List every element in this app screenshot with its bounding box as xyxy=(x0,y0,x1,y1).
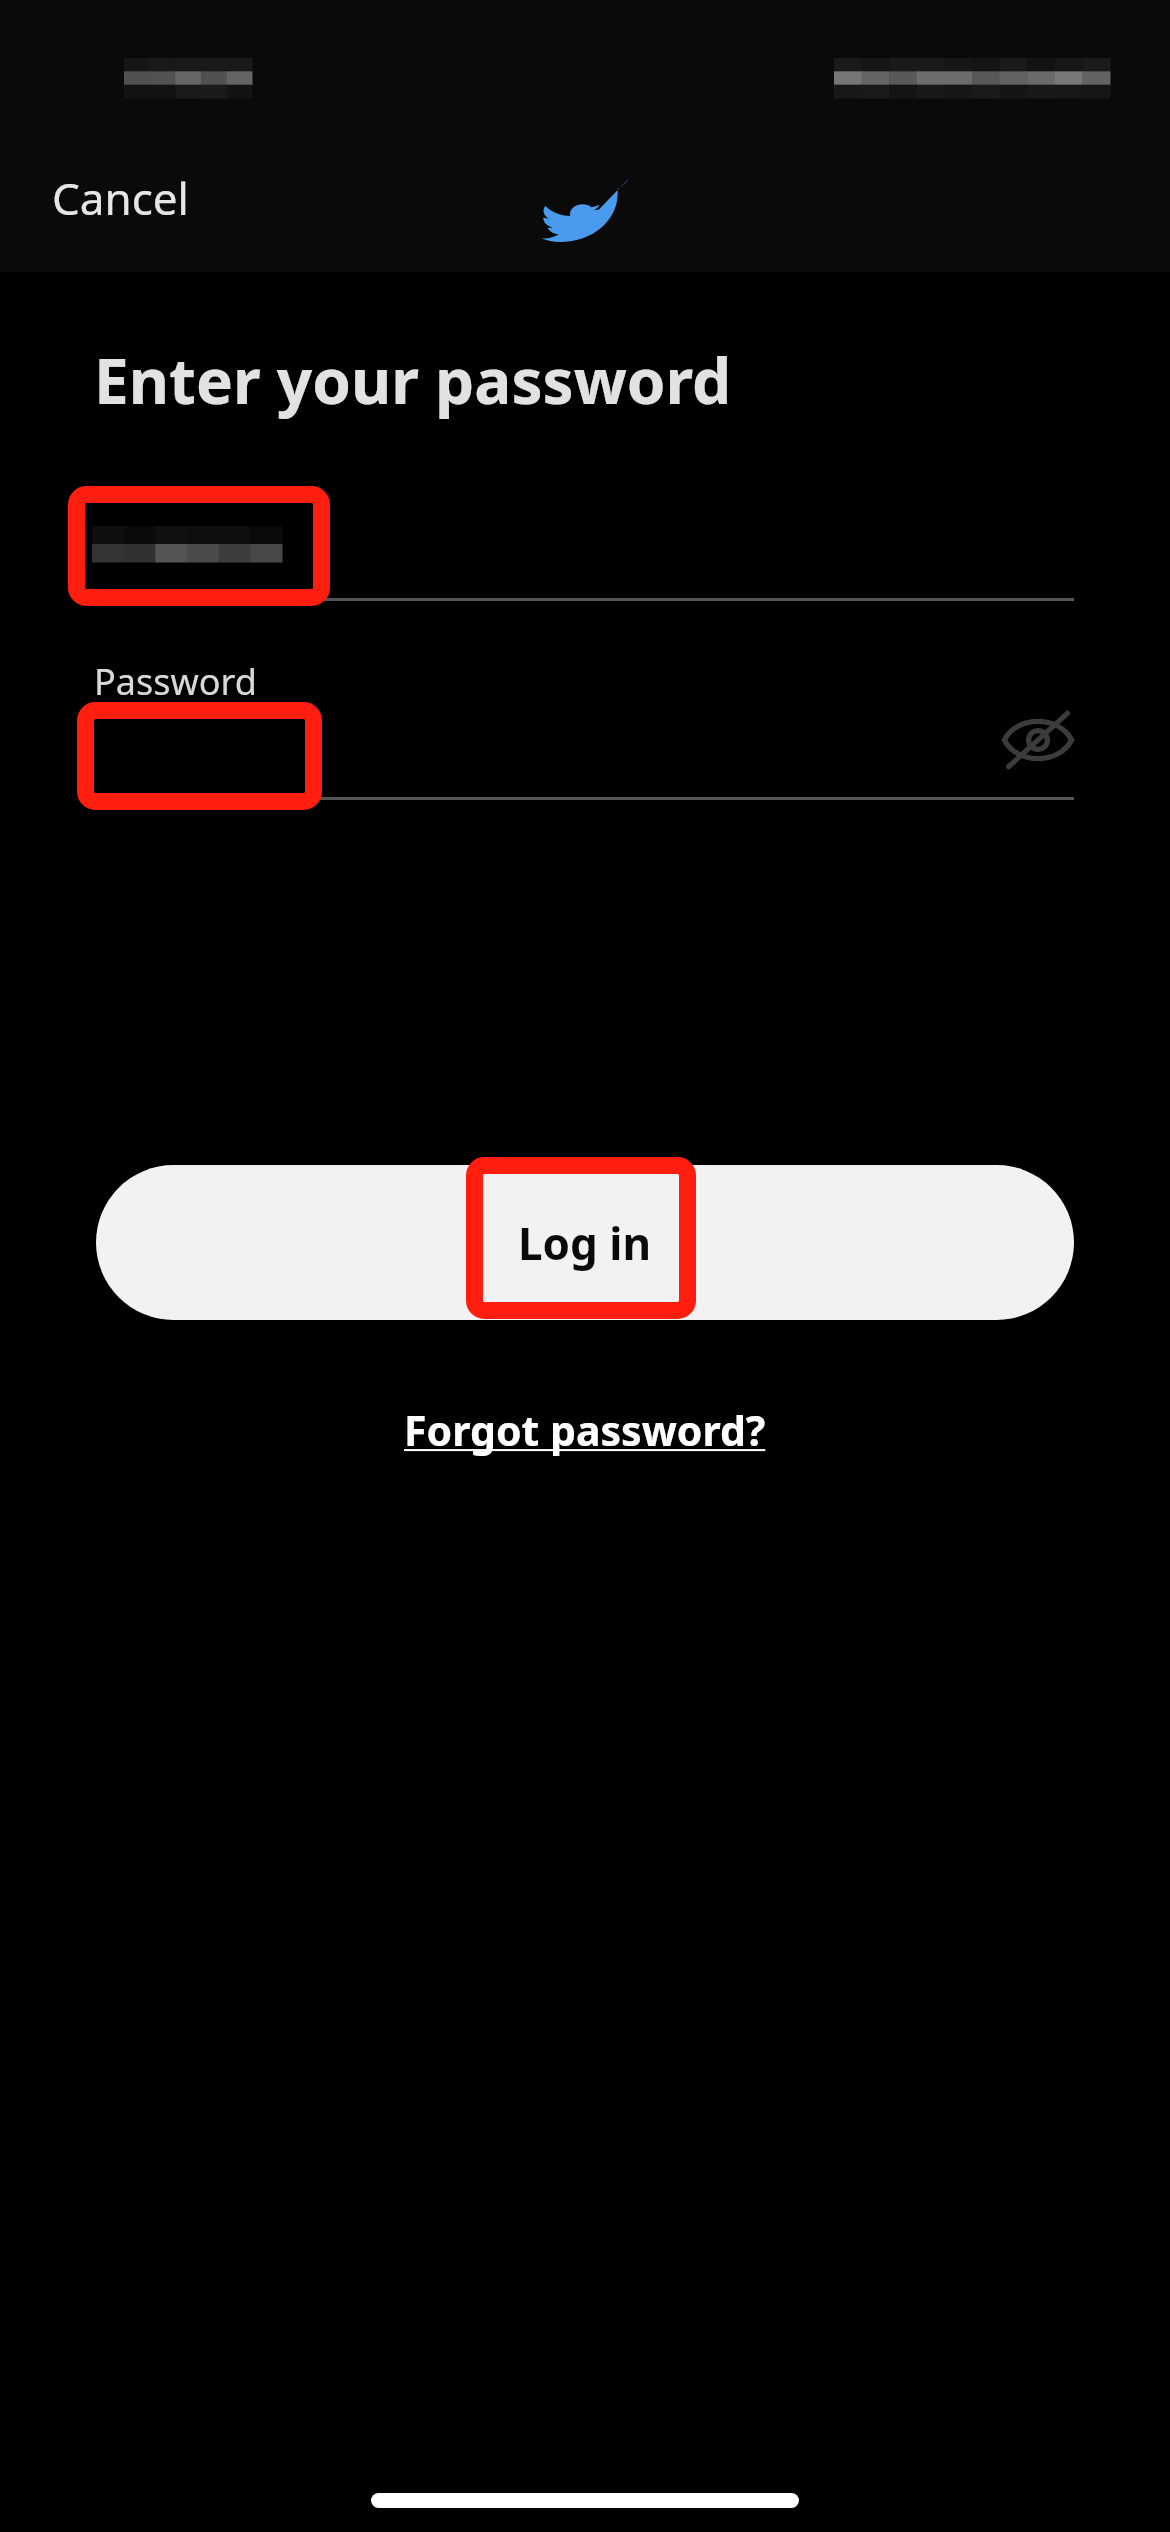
staticText: Enter your password xyxy=(94,338,732,422)
staticText: Cancel xyxy=(52,168,189,228)
staticText: Forgot password? xyxy=(404,1402,766,1458)
staticText: Password xyxy=(94,657,257,706)
button[interactable]: Show password xyxy=(990,692,1086,788)
button[interactable]: Cancel xyxy=(30,160,167,220)
button[interactable]: Password xyxy=(92,702,982,798)
staticText: Log in xyxy=(518,1213,652,1273)
button[interactable]: Username xyxy=(92,490,1074,600)
other: Twitter xyxy=(541,170,629,242)
button[interactable]: Forgot password? xyxy=(404,1392,766,1448)
button[interactable]: Log in xyxy=(96,1165,1074,1320)
